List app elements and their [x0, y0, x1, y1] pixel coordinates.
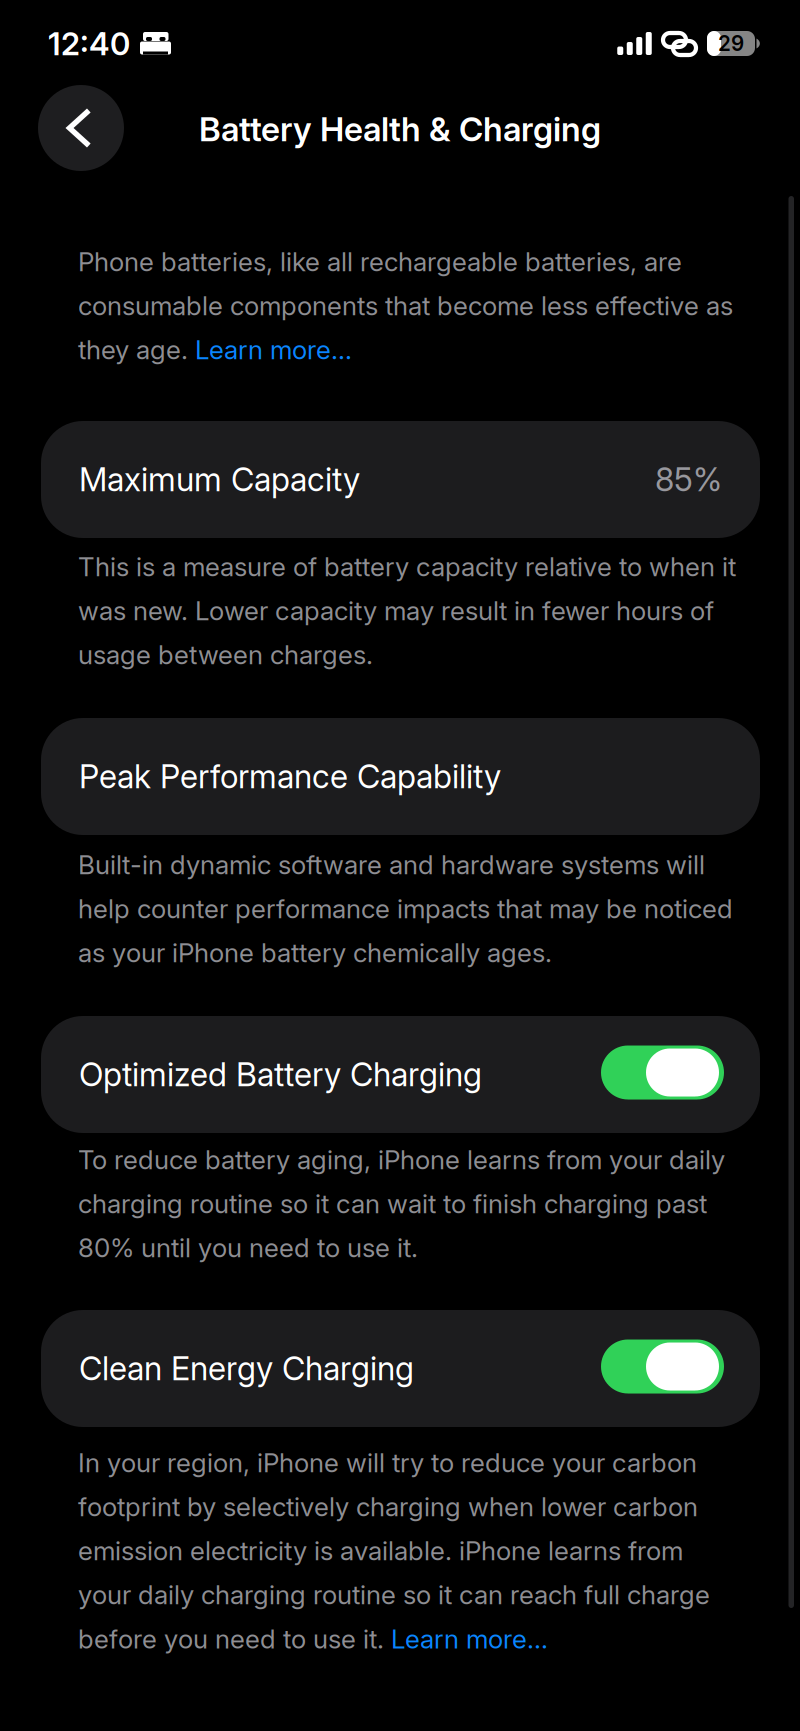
staticText: This is a measure of battery capacity re… [78, 551, 736, 671]
button[interactable]: Maximum Capacity [41, 421, 760, 538]
staticText: Optimized Battery Charging [79, 1055, 482, 1094]
staticText: Built-in dynamic software and hardware s… [78, 849, 733, 969]
button[interactable]: Back [38, 85, 124, 171]
button[interactable]: Peak Performance Capability [41, 718, 760, 835]
staticText: 12:40 [48, 25, 130, 63]
staticText: In your region, iPhone will try to reduc… [78, 1447, 710, 1655]
staticText: Peak Performance Capability [79, 757, 501, 796]
staticText: To reduce battery aging, iPhone learns f… [78, 1144, 725, 1264]
staticText: Maximum Capacity [79, 460, 360, 499]
button[interactable]: Clean Energy Charging [41, 1310, 760, 1427]
staticText: 85% [655, 460, 722, 499]
button[interactable]: Optimized Battery Charging [41, 1016, 760, 1133]
staticText: Clean Energy Charging [79, 1349, 414, 1388]
staticText: Battery Health & Charging [199, 109, 601, 149]
staticText: Phone batteries, like all rechargeable b… [78, 246, 733, 366]
staticText: 29 [718, 31, 744, 56]
